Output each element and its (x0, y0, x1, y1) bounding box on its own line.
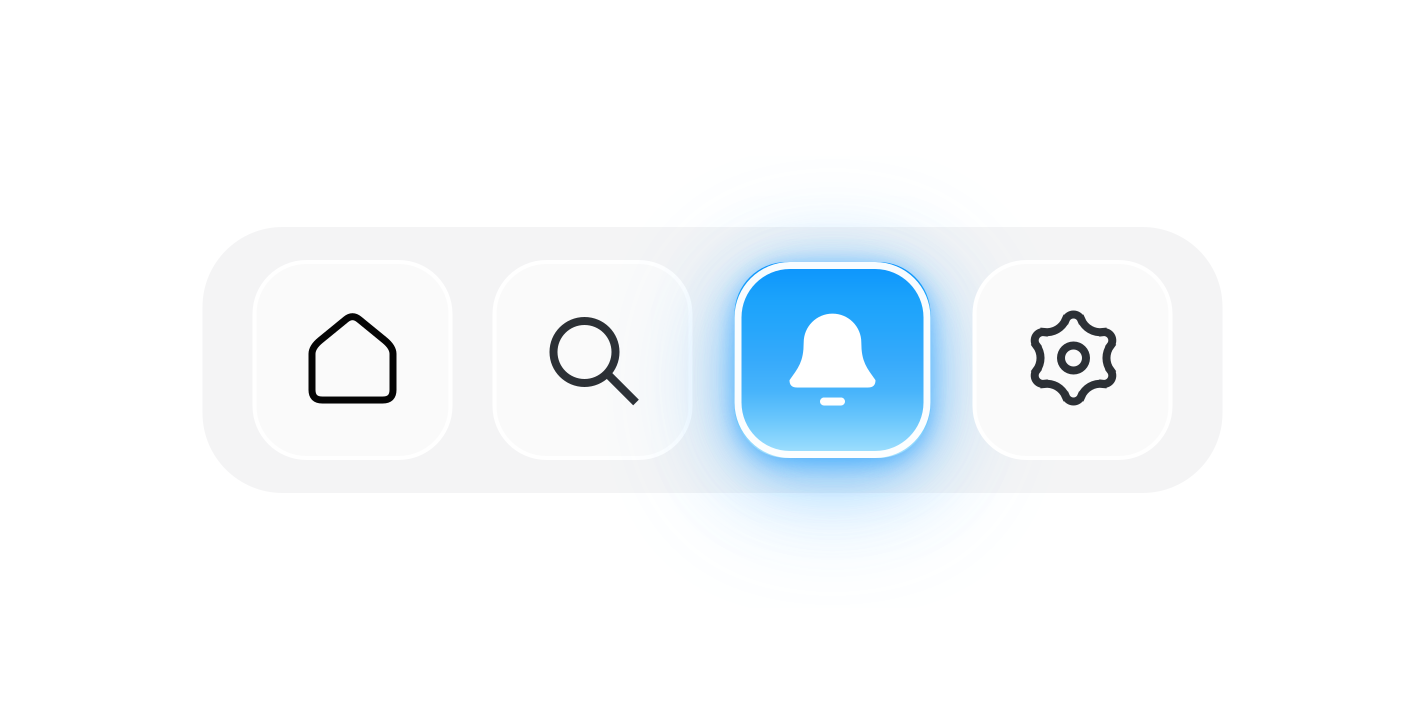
button[interactable]: Search (494, 262, 690, 458)
button[interactable]: Settings (974, 262, 1170, 458)
button[interactable]: Notifications (734, 262, 930, 458)
button[interactable]: Home (254, 262, 450, 458)
